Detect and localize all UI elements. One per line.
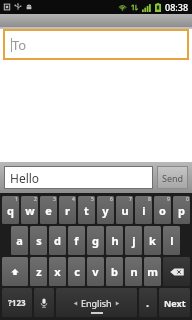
button[interactable]: u: [116, 196, 133, 224]
staticText: To: [12, 36, 27, 54]
button[interactable]: f: [68, 226, 85, 255]
button[interactable]: e: [40, 196, 57, 224]
button[interactable]: c: [68, 257, 85, 286]
staticText: 9: [167, 196, 170, 203]
button[interactable]: j: [125, 226, 142, 255]
button[interactable]: w: [21, 196, 38, 224]
staticText: Send: [162, 172, 184, 184]
staticText: k: [149, 233, 156, 248]
button[interactable]: p: [173, 196, 190, 224]
button[interactable]: q: [2, 196, 19, 224]
button[interactable]: Next: [159, 288, 190, 317]
button[interactable]: Voice input: [34, 288, 54, 317]
staticText: l: [170, 233, 174, 248]
staticText: i: [142, 203, 146, 218]
staticText: 0: [186, 196, 189, 203]
button[interactable]: o: [154, 196, 171, 224]
staticText: Next: [164, 297, 186, 309]
button[interactable]: Send: [157, 166, 188, 189]
button[interactable]: n: [125, 257, 142, 286]
staticText: 1: [15, 196, 18, 203]
staticText: d: [54, 233, 61, 248]
staticText: q: [7, 203, 14, 218]
staticText: u: [121, 203, 129, 218]
staticText: m: [147, 264, 158, 279]
staticText: s: [36, 233, 42, 248]
staticText: z: [36, 264, 42, 279]
button[interactable]: k: [144, 226, 161, 255]
button[interactable]: m: [144, 257, 161, 286]
staticText: 08:38: [165, 1, 189, 13]
button[interactable]: To: [3, 29, 189, 60]
staticText: j: [132, 233, 136, 248]
staticText: 2: [34, 196, 37, 203]
staticText: Hello: [10, 170, 40, 186]
staticText: x: [54, 264, 61, 279]
button[interactable]: x: [49, 257, 66, 286]
staticText: r: [65, 203, 70, 218]
staticText: .: [146, 295, 150, 310]
staticText: 7: [129, 196, 132, 203]
button[interactable]: .: [139, 288, 157, 317]
button[interactable]: Shift: [2, 257, 28, 286]
staticText: c: [74, 264, 80, 279]
button[interactable]: i: [135, 196, 152, 224]
button[interactable]: s: [30, 226, 47, 255]
button[interactable]: h: [106, 226, 123, 255]
staticText: w: [25, 203, 35, 218]
staticText: o: [159, 203, 166, 218]
staticText: g: [92, 233, 99, 248]
staticText: 8: [148, 196, 151, 203]
button[interactable]: Delete: [163, 257, 190, 286]
button[interactable]: a: [11, 226, 28, 255]
button[interactable]: l: [163, 226, 180, 255]
staticText: y: [102, 203, 109, 218]
staticText: v: [92, 264, 99, 279]
button[interactable]: y: [97, 196, 114, 224]
staticText: t: [84, 203, 89, 218]
button[interactable]: d: [49, 226, 66, 255]
staticText: 4: [72, 196, 75, 203]
staticText: English: [81, 297, 112, 309]
staticText: 3: [53, 196, 56, 203]
staticText: b: [111, 264, 118, 279]
staticText: e: [45, 203, 52, 218]
button[interactable]: r: [59, 196, 76, 224]
button[interactable]: English: [56, 288, 137, 317]
staticText: 5: [91, 196, 94, 203]
staticText: f: [74, 233, 79, 248]
staticText: ?123: [8, 297, 26, 308]
staticText: n: [130, 264, 138, 279]
button[interactable]: Hello: [4, 166, 153, 189]
button[interactable]: ?123: [2, 288, 32, 317]
staticText: p: [178, 203, 185, 218]
staticText: h: [111, 233, 119, 248]
staticText: a: [16, 233, 23, 248]
button[interactable]: g: [87, 226, 104, 255]
staticText: 6: [110, 196, 113, 203]
button[interactable]: b: [106, 257, 123, 286]
button[interactable]: v: [87, 257, 104, 286]
button[interactable]: t: [78, 196, 95, 224]
button[interactable]: z: [30, 257, 47, 286]
